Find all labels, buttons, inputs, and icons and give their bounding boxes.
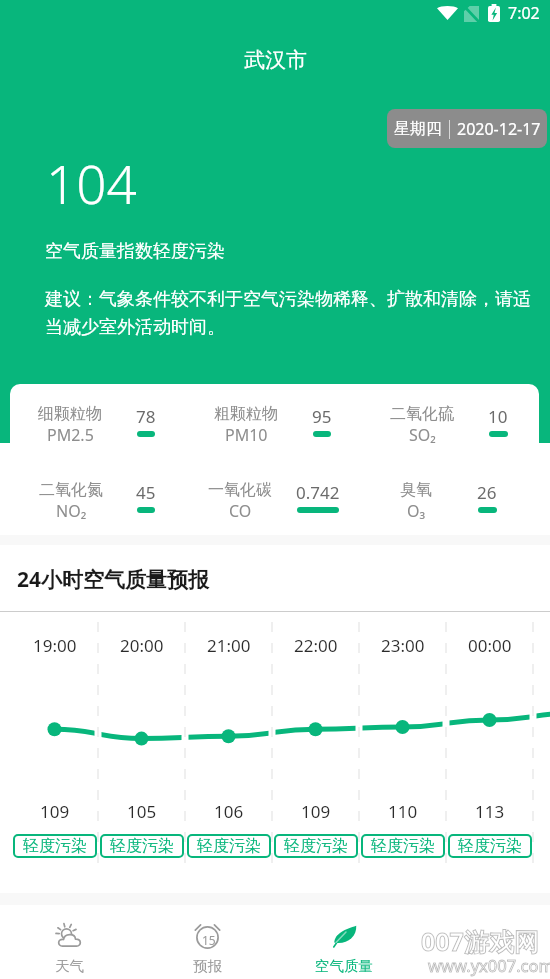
staticText: 轻度污染 (197, 836, 261, 856)
staticText: 24小时空气质量预报 (17, 565, 210, 594)
button[interactable]: 轻度污染 (100, 834, 184, 858)
staticText: 109 (40, 800, 70, 823)
button[interactable]: 天气 (0, 905, 138, 979)
staticText: 105 (127, 800, 157, 823)
button[interactable]: 星期四 (387, 109, 547, 148)
staticText: 空气质量指数轻度污染 (45, 240, 225, 263)
staticText: 19:00 (33, 634, 77, 657)
staticText: 95 (312, 405, 332, 428)
button[interactable]: 轻度污染 (187, 834, 271, 858)
staticText: 粗颗粒物 (214, 404, 278, 424)
staticText: www.yx007.com (428, 954, 550, 976)
staticText: SO₂ (409, 424, 436, 446)
staticText: 细颗粒物 (38, 404, 102, 424)
staticText: 10 (488, 405, 508, 428)
staticText: 7:02 (508, 2, 540, 24)
staticText: 0.742 (296, 481, 340, 504)
staticText: 二氧化氮 (39, 480, 103, 500)
staticText: 78 (136, 405, 156, 428)
staticText: 建议：气象条件较不利于空气污染物稀释、扩散和清除，请适当减少室外活动时间。 (45, 288, 546, 338)
staticText: 轻度污染 (23, 836, 87, 856)
button[interactable]: 轻度污染 (13, 834, 97, 858)
staticText: 轻度污染 (110, 836, 174, 856)
staticText: CO (229, 500, 252, 522)
button[interactable]: 轻度污染 (274, 834, 358, 858)
staticText: 106 (214, 800, 244, 823)
staticText: O₃ (407, 500, 426, 522)
staticText: 武汉市 (244, 47, 307, 73)
staticText: 00:00 (468, 634, 512, 657)
staticText: 22:00 (294, 634, 338, 657)
staticText: 轻度污染 (371, 836, 435, 856)
staticText: 空气质量 (315, 957, 373, 975)
staticText: PM10 (225, 424, 268, 446)
staticText: NO₂ (56, 500, 87, 522)
button[interactable]: 轻度污染 (361, 834, 445, 858)
staticText: 007游戏网 (421, 924, 539, 958)
staticText: 21:00 (207, 634, 251, 657)
staticText: 2020-12-17 (457, 118, 541, 140)
staticText: 臭氧 (400, 480, 432, 500)
staticText: 二氧化硫 (390, 404, 454, 424)
staticText: 23:00 (381, 634, 425, 657)
staticText: PM2.5 (47, 424, 94, 446)
staticText: 一氧化碳 (208, 480, 272, 500)
staticText: 110 (388, 800, 418, 823)
staticText: 星期四 (394, 119, 442, 139)
staticText: 113 (475, 800, 505, 823)
staticText: 轻度污染 (284, 836, 348, 856)
staticText: 109 (301, 800, 331, 823)
staticText: 26 (477, 481, 497, 504)
staticText: 20:00 (120, 634, 164, 657)
button[interactable]: 空气质量 (275, 905, 413, 979)
staticText: 轻度污染 (458, 836, 522, 856)
staticText: 15 (202, 932, 216, 948)
staticText: 104 (46, 147, 137, 219)
staticText: 45 (136, 481, 156, 504)
staticText: 预报 (193, 957, 222, 975)
button[interactable]: 轻度污染 (448, 834, 532, 858)
staticText: 天气 (55, 957, 84, 975)
button[interactable]: 15 (138, 905, 276, 979)
